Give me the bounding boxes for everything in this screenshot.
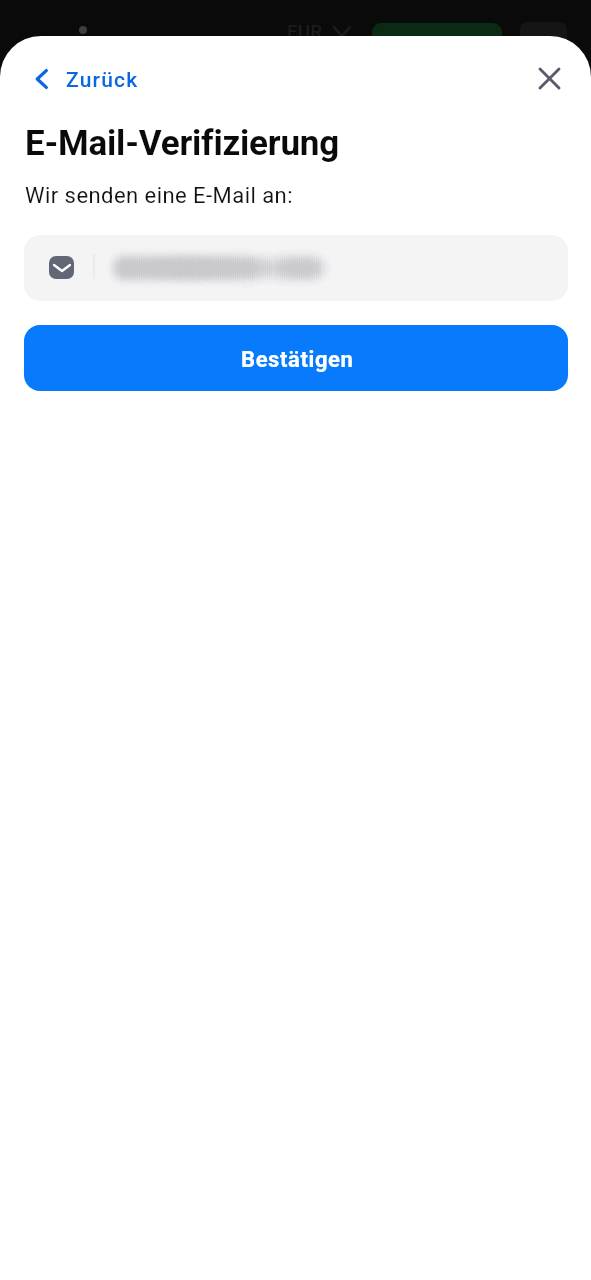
staticText: Wir senden eine E-Mail an: <box>25 183 293 209</box>
button[interactable]: Bestätigen <box>24 325 568 391</box>
button[interactable]: Zurück <box>31 62 147 99</box>
staticText: Zurück <box>66 68 139 93</box>
staticText: Bestätigen <box>241 347 354 373</box>
button[interactable]: Aktion <box>372 23 502 47</box>
button[interactable] <box>24 235 568 301</box>
button[interactable]: EUR <box>287 20 350 42</box>
button[interactable]: Menü <box>520 22 567 46</box>
staticText: E-Mail-Verifizierung <box>25 123 340 164</box>
button[interactable]: Schließen <box>530 59 568 97</box>
staticText: EUR <box>287 20 323 42</box>
